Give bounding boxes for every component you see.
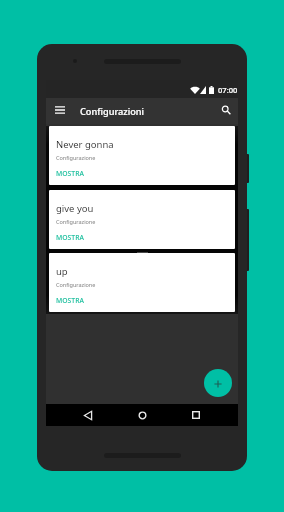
staticText: 07:00 xyxy=(218,85,238,95)
button[interactable]: Add xyxy=(204,369,232,397)
staticText: MOSTRA xyxy=(56,296,84,305)
button[interactable]: Search xyxy=(214,98,238,124)
staticText: Configurazioni xyxy=(80,105,145,118)
button[interactable]: Back xyxy=(78,404,98,426)
button[interactable]: up xyxy=(49,253,235,312)
button[interactable]: Menu xyxy=(48,98,71,124)
button[interactable]: MOSTRA xyxy=(56,169,84,178)
button[interactable]: MOSTRA xyxy=(56,233,84,242)
staticText: Configurazione xyxy=(56,281,96,288)
staticText: up xyxy=(56,265,68,278)
staticText: MOSTRA xyxy=(56,169,84,178)
staticText: Configurazione xyxy=(56,218,96,225)
button[interactable]: Recents xyxy=(186,404,206,426)
staticText: Configurazione xyxy=(56,154,96,161)
staticText: give you xyxy=(56,202,94,215)
button[interactable]: give you xyxy=(49,190,235,249)
button[interactable]: Never gonna xyxy=(49,126,235,185)
button[interactable]: MOSTRA xyxy=(56,296,84,305)
button[interactable]: Home xyxy=(132,404,152,426)
staticText: Never gonna xyxy=(56,138,114,151)
staticText: MOSTRA xyxy=(56,233,84,242)
